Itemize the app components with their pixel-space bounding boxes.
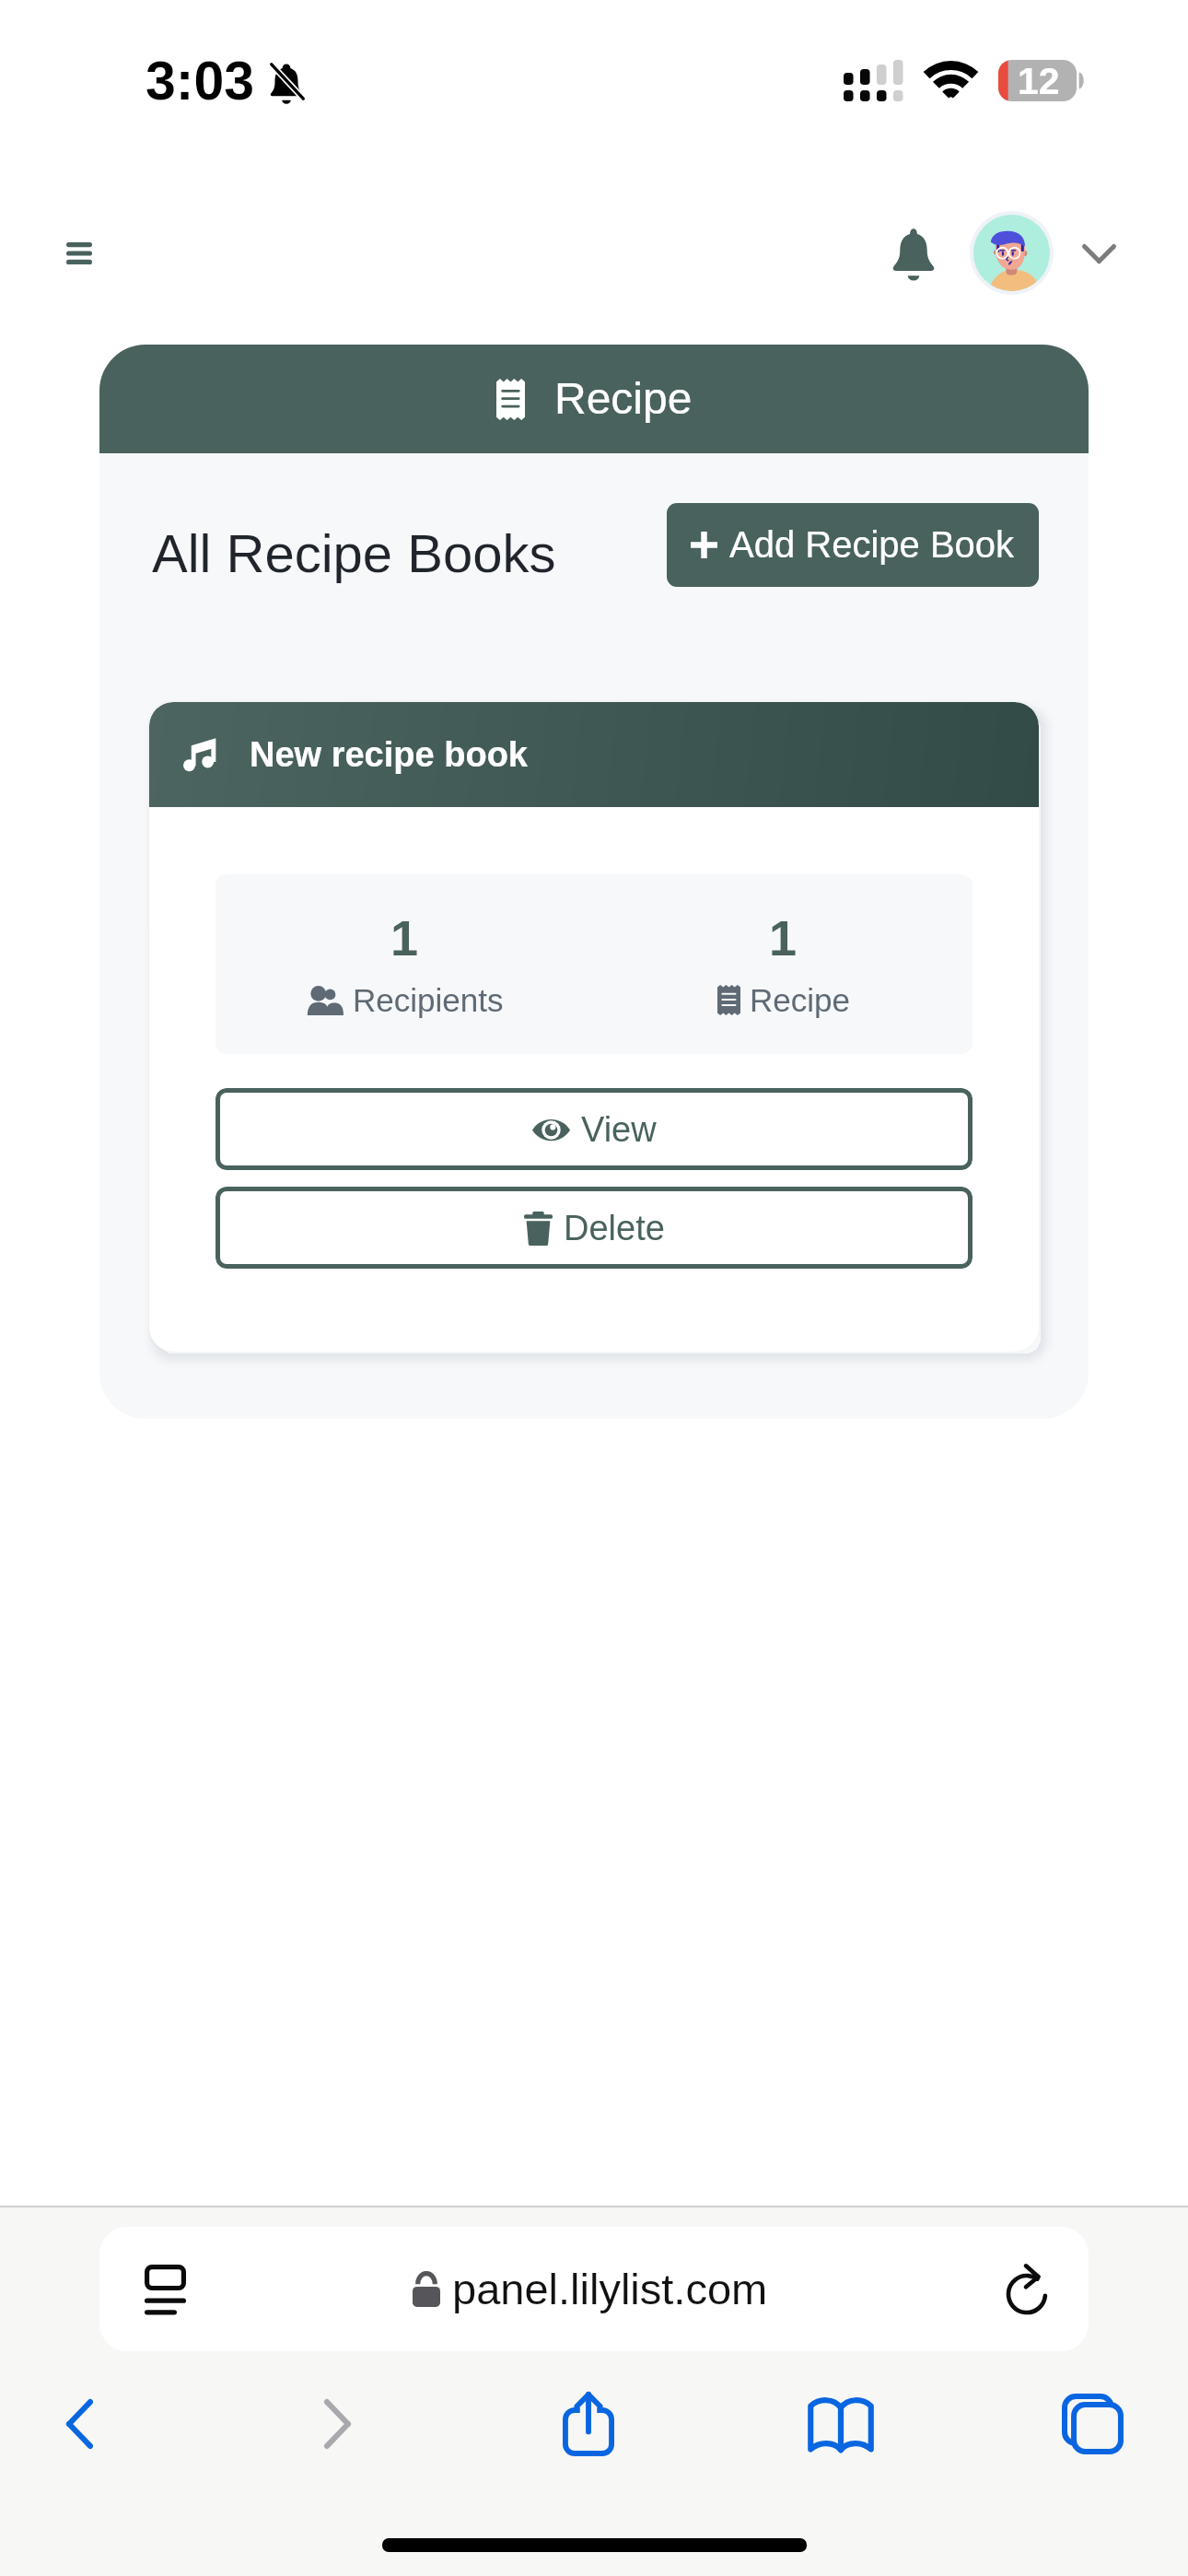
staticText: 1 [769,910,798,966]
button[interactable]: View [215,1088,973,1170]
button[interactable]: Add Recipe Book [667,503,1039,587]
button[interactable]: Forward [276,2362,398,2486]
staticText: View [581,1110,657,1149]
staticText: Delete [564,1209,665,1247]
staticText: New recipe book [250,735,528,774]
staticText: 1 [390,910,419,966]
staticText: 12 [1018,60,1060,101]
button[interactable]: Bookmarks [780,2362,902,2486]
button[interactable]: Page settings [131,2255,199,2324]
button[interactable]: Tabs [1031,2362,1153,2486]
staticText: panel.lilylist.com [452,2265,768,2313]
button[interactable]: Profile [973,215,1050,291]
staticText: Recipients [353,982,504,1018]
staticText: Add Recipe Book [729,524,1015,566]
button[interactable]: Menu [37,211,122,296]
staticText: All Recipe Books [152,523,556,583]
button[interactable]: Share [528,2362,649,2486]
staticText: 3:03 [146,51,255,111]
button[interactable]: Notifications [871,211,956,296]
button[interactable]: Delete [215,1187,973,1269]
button[interactable]: Page settings [99,2227,1089,2351]
staticText: Recipe [554,374,693,424]
staticText: Recipe [750,982,850,1018]
button[interactable]: Account menu [1071,226,1126,281]
button[interactable]: Reload [994,2255,1062,2324]
button[interactable]: Back [18,2362,140,2486]
